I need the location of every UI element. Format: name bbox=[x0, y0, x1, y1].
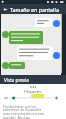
staticText: Vista previa bbox=[4, 77, 29, 83]
button[interactable]: Message bbox=[35, 18, 52, 27]
staticText: Pequeño bbox=[0, 89, 66, 95]
button[interactable]: Message bbox=[17, 46, 53, 60]
staticText: Tamaño en pantalla bbox=[10, 6, 59, 13]
button[interactable]: Message bbox=[9, 62, 25, 69]
button[interactable]: Message bbox=[9, 31, 43, 44]
button[interactable]: Back bbox=[0, 4, 10, 14]
staticText: Puedes hacer que los elementos de la pan… bbox=[3, 104, 49, 119]
